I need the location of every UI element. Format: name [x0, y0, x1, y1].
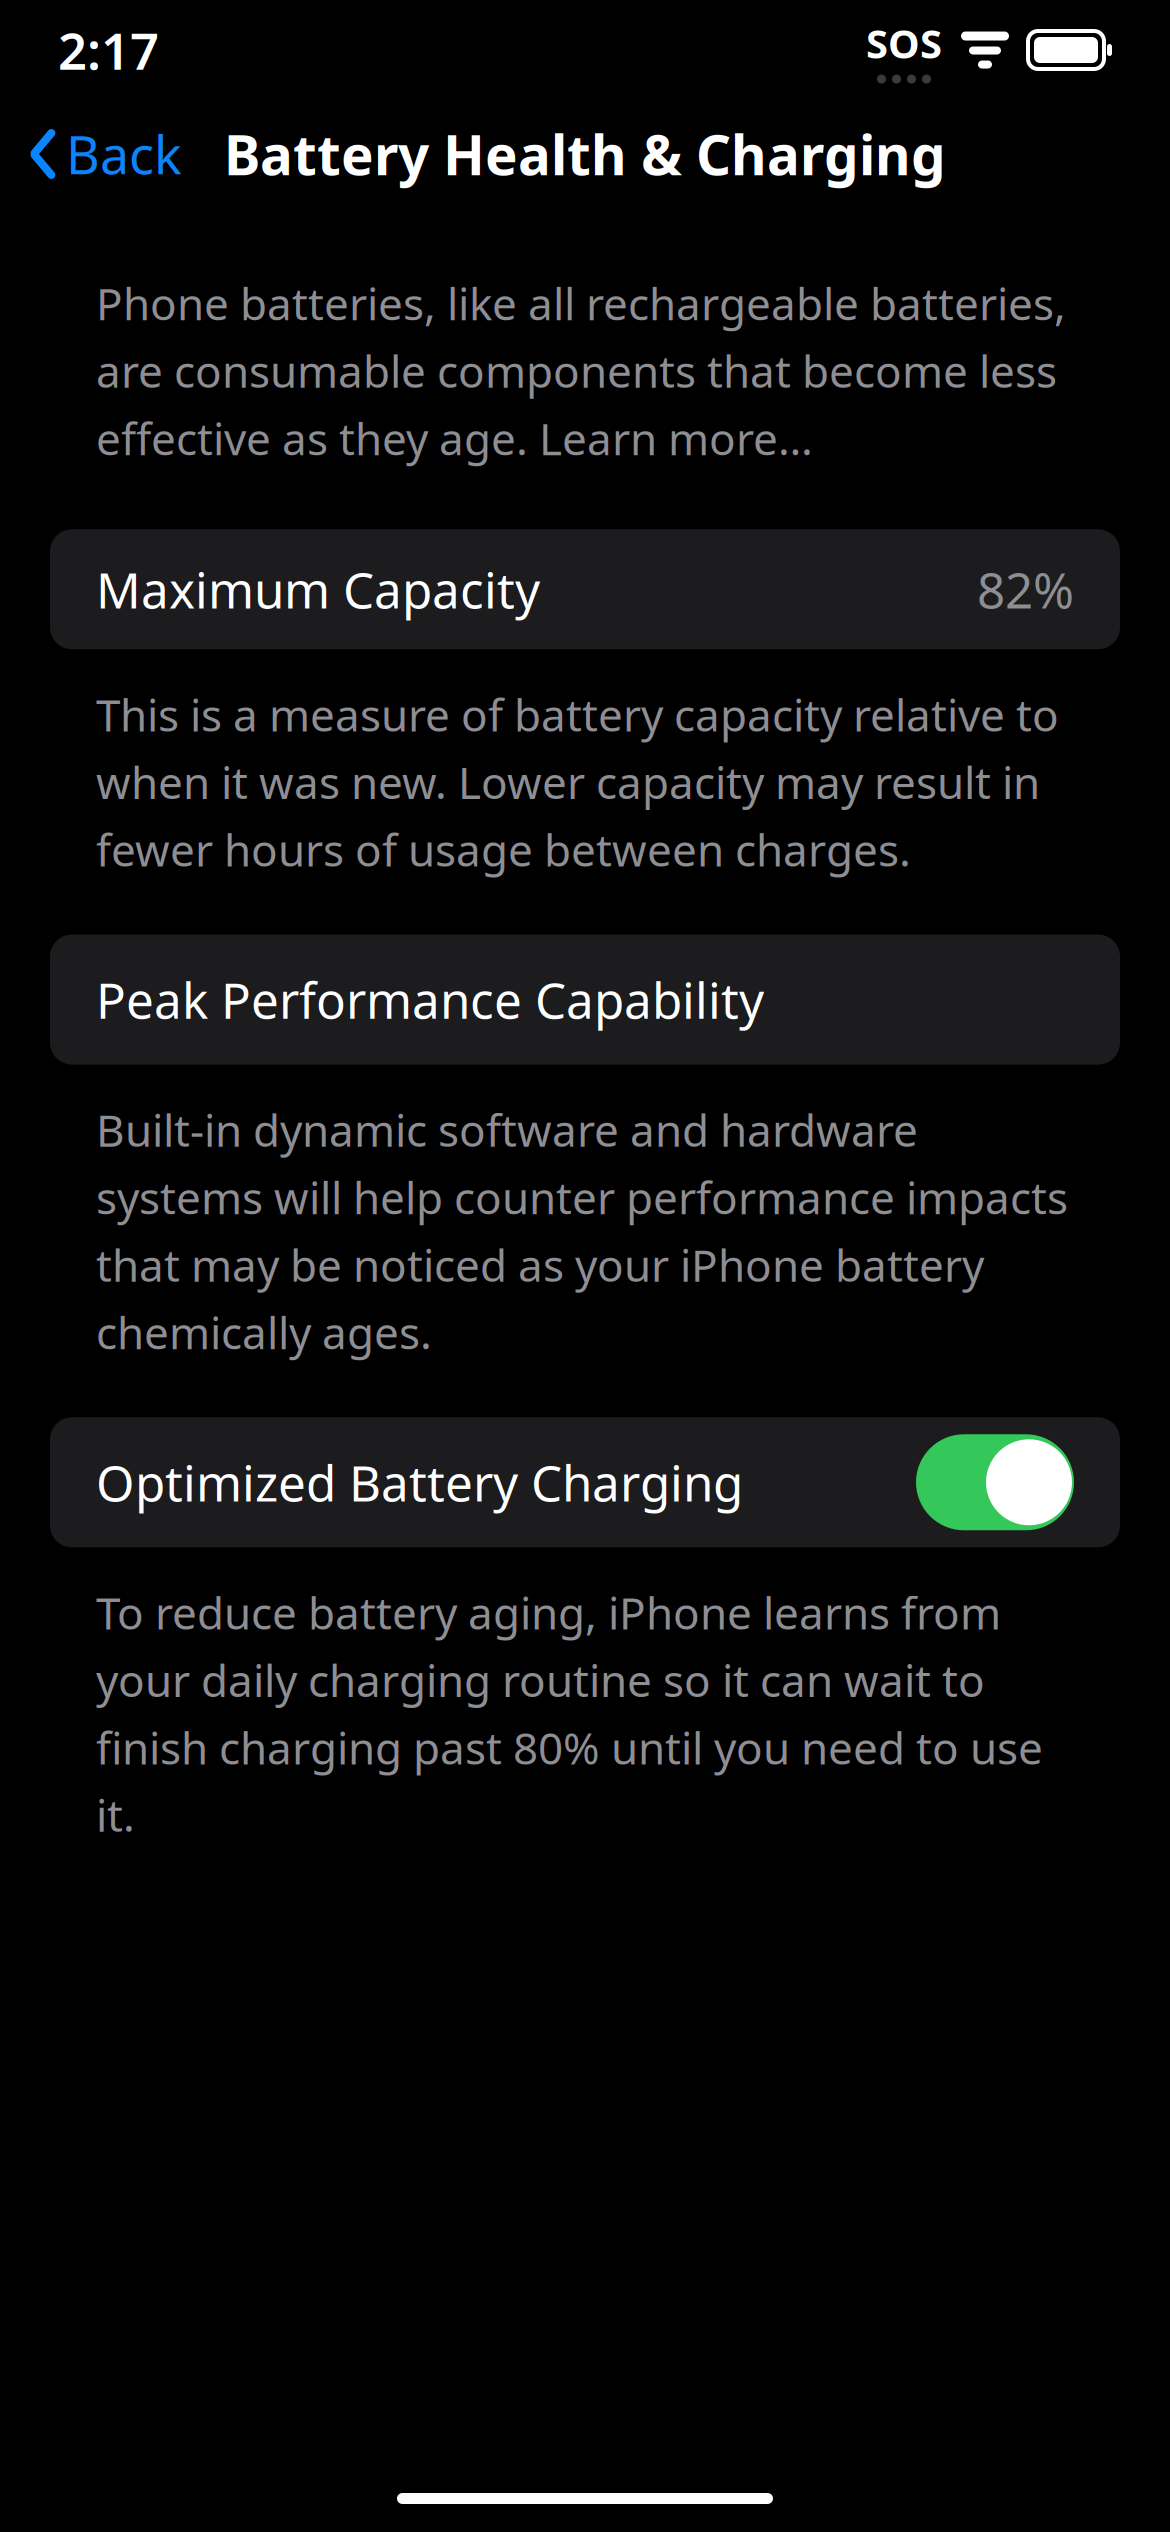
staticText: Back: [66, 119, 182, 189]
staticText: 82%: [977, 556, 1074, 622]
button[interactable]: Optimized Battery Charging: [50, 1417, 1120, 1547]
button[interactable]: Peak Performance Capability: [50, 935, 1120, 1065]
staticText: 2:17: [58, 16, 159, 84]
staticText: Maximum Capacity: [96, 556, 540, 622]
staticText: This is a measure of battery capacity re…: [96, 685, 1059, 879]
button[interactable]: Maximum Capacity: [50, 529, 1120, 649]
staticText: Built-in dynamic software and hardware s…: [96, 1101, 1068, 1361]
staticText: Optimized Battery Charging: [96, 1449, 743, 1515]
staticText: Peak Performance Capability: [96, 967, 764, 1032]
staticText: SOS: [866, 16, 942, 69]
staticText: To reduce battery aging, iPhone learns f…: [96, 1583, 1043, 1844]
staticText: Phone batteries, like all rechargeable b…: [96, 274, 1066, 467]
button[interactable]: Back: [12, 107, 200, 201]
staticText: Battery Health & Charging: [224, 118, 946, 190]
